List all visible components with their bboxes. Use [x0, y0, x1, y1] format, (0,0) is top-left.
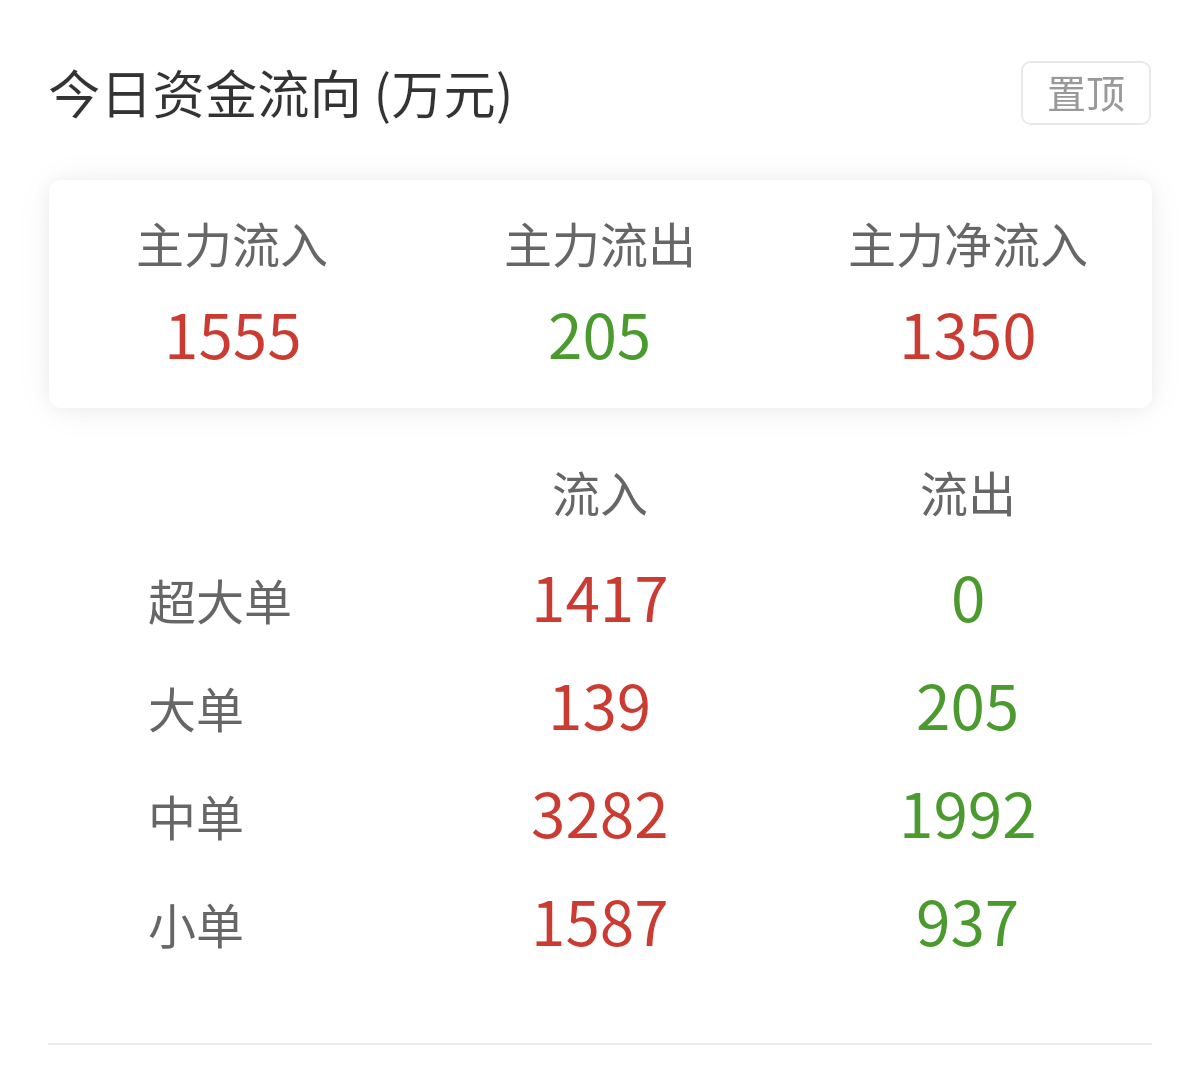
- staticText: 流出: [920, 456, 1017, 526]
- button[interactable]: 主力净流入: [784, 180, 1152, 408]
- staticText: 1992: [899, 766, 1037, 856]
- staticText: 937: [916, 874, 1020, 964]
- staticText: 1587: [531, 874, 669, 964]
- staticText: 主力流入: [136, 207, 329, 277]
- staticText: 1350: [899, 287, 1037, 377]
- staticText: 小单: [148, 888, 245, 958]
- staticText: 3282: [531, 766, 669, 856]
- staticText: 超大单: [148, 564, 293, 634]
- staticText: 流入: [552, 456, 649, 526]
- staticText: 主力流出: [504, 207, 697, 277]
- button[interactable]: 大单: [48, 655, 1152, 751]
- staticText: 205: [548, 287, 652, 377]
- button[interactable]: 中单: [48, 763, 1152, 859]
- staticText: 今日资金流向 (万元): [48, 53, 514, 129]
- button[interactable]: 置顶 Pin to top: [1021, 61, 1151, 125]
- staticText: 205: [916, 658, 1020, 748]
- staticText: 中单: [148, 780, 245, 850]
- staticText: 置顶: [1047, 63, 1126, 119]
- staticText: 大单: [148, 672, 245, 742]
- button[interactable]: 主力流出: [416, 180, 784, 408]
- staticText: 0: [951, 550, 986, 640]
- staticText: 139: [548, 658, 652, 748]
- button[interactable]: 超大单: [48, 547, 1152, 643]
- staticText: 主力净流入: [848, 207, 1089, 277]
- button[interactable]: 小单: [48, 871, 1152, 967]
- button[interactable]: 主力流入: [49, 180, 416, 408]
- staticText: 1417: [531, 550, 669, 640]
- staticText: 1555: [164, 287, 302, 377]
